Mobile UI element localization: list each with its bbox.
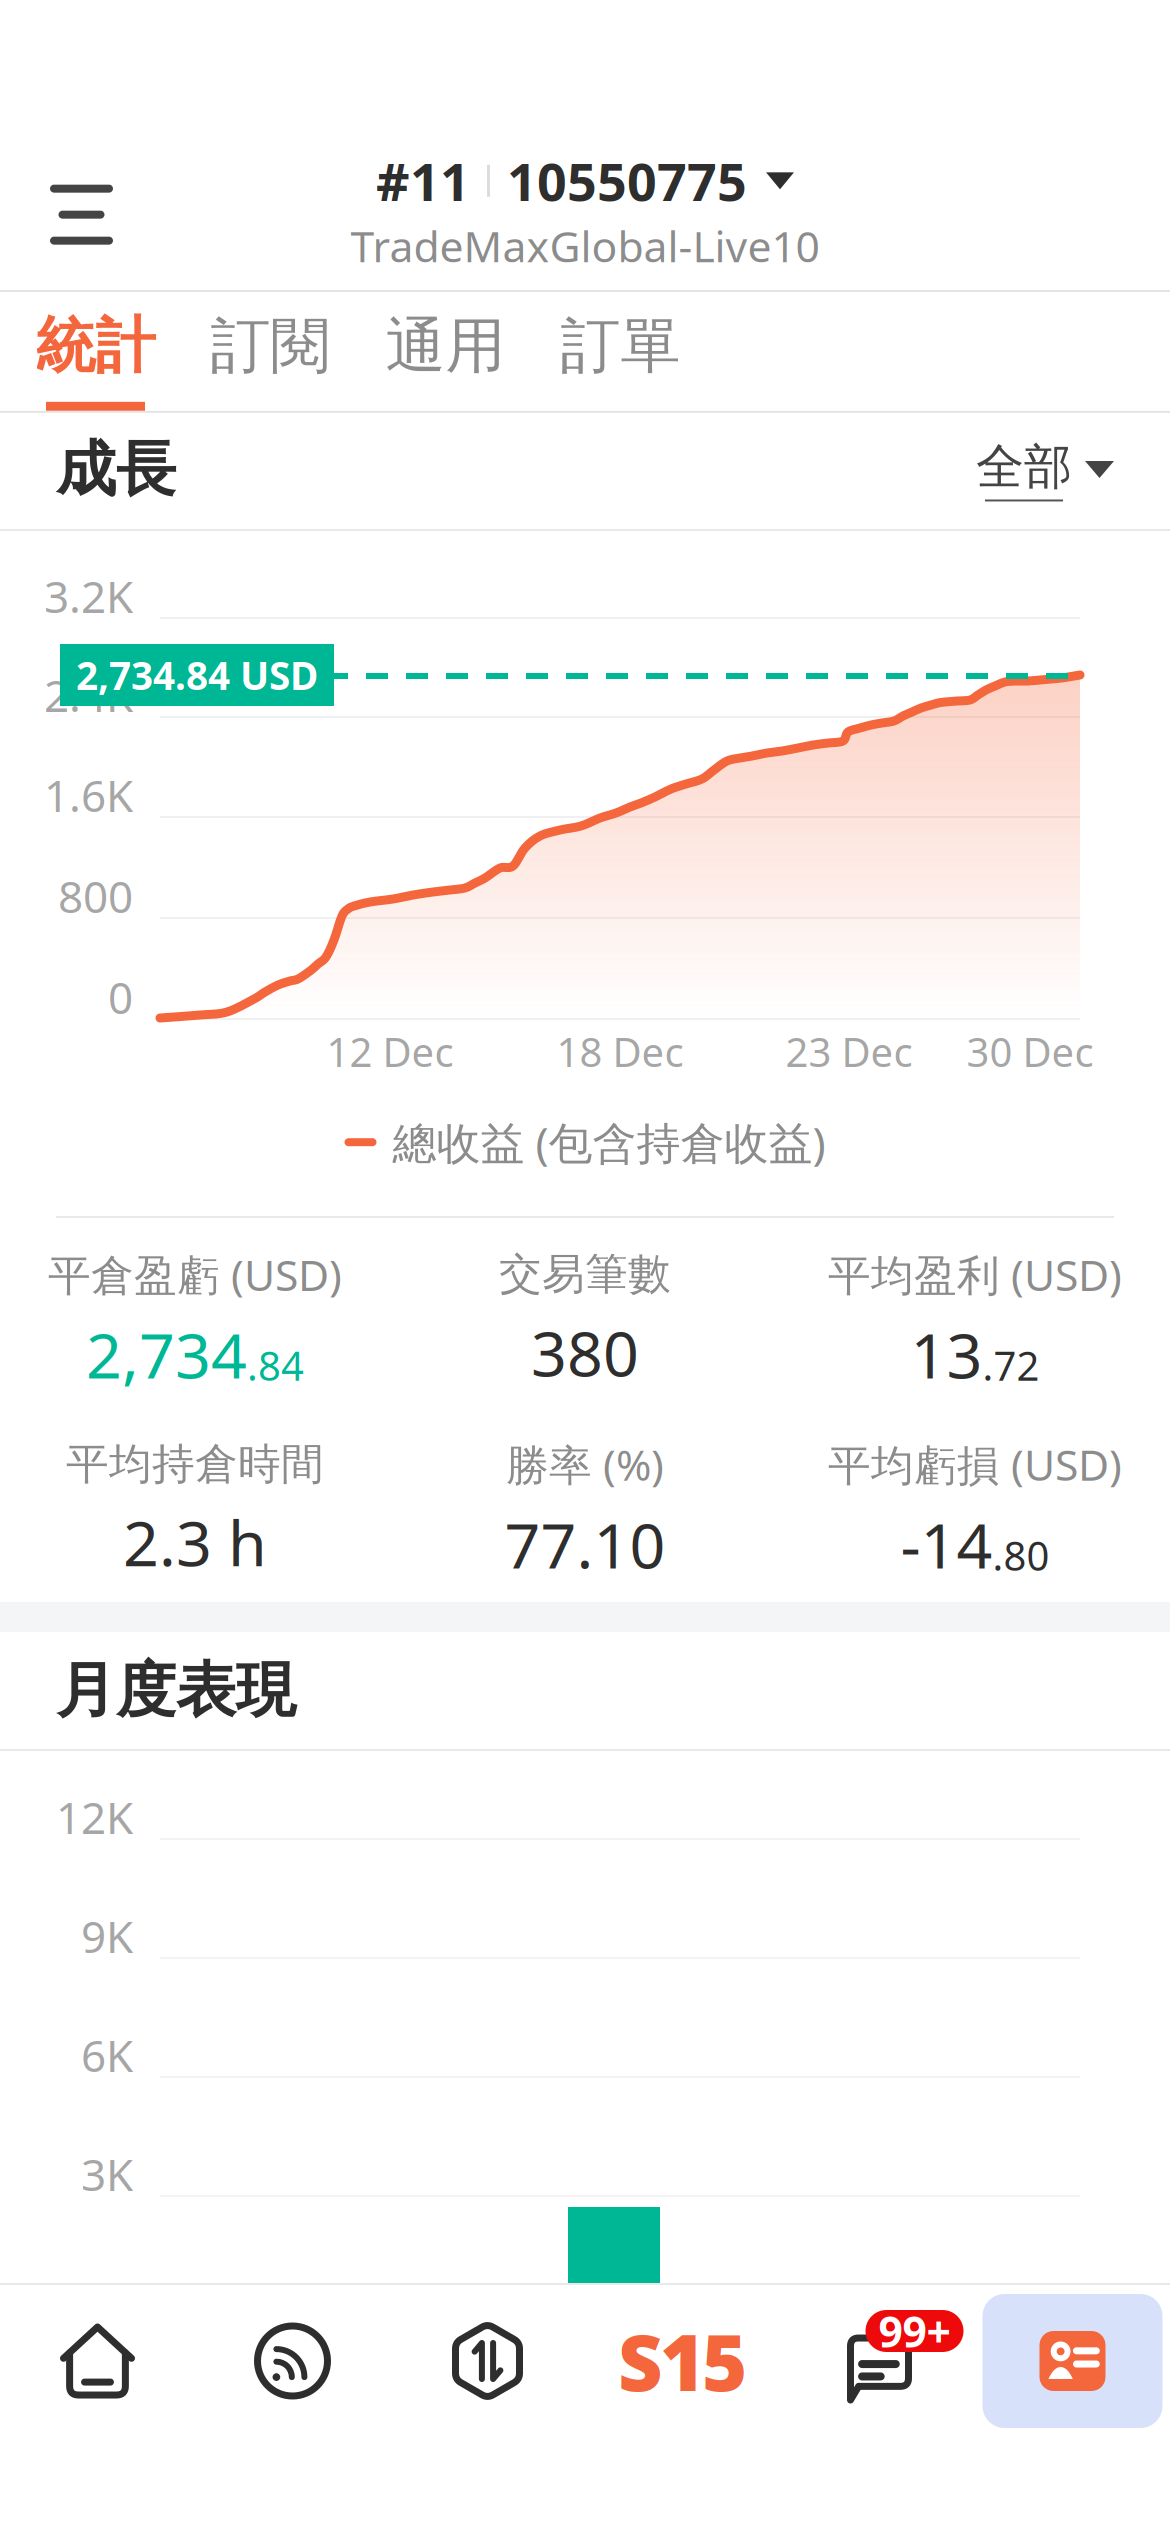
button[interactable]: 訂閱 <box>183 289 358 411</box>
staticText: 2,734 <box>86 1313 247 1396</box>
button[interactable]: S15 <box>585 2285 780 2437</box>
staticText: 平均持倉時間 <box>66 1438 324 1490</box>
staticText: 3K <box>81 2145 133 2203</box>
staticText: 2.3 h <box>123 1500 267 1584</box>
staticText: 77.10 <box>504 1502 665 1586</box>
staticText: 平倉盈虧 (USD) <box>48 1246 342 1303</box>
staticText: #11 <box>376 146 470 215</box>
staticText: 10550775 <box>507 146 747 215</box>
staticText: 23 Dec <box>785 1025 912 1078</box>
staticText: 訂閱 <box>210 309 330 383</box>
button[interactable]: Account <box>975 2285 1170 2437</box>
button[interactable]: Signals <box>195 2285 390 2437</box>
button[interactable]: Menu <box>0 161 153 278</box>
staticText: 99+ <box>878 2303 950 2359</box>
staticText: 交易筆數 <box>499 1248 671 1300</box>
staticText: .84 <box>247 1339 304 1392</box>
staticText: 1.6K <box>44 766 133 824</box>
staticText: 2.4K <box>44 666 133 724</box>
staticText: 6K <box>81 2026 133 2084</box>
staticText: 平均盈利 (USD) <box>828 1246 1122 1303</box>
staticText: 12K <box>56 1788 133 1846</box>
staticText: 9K <box>81 1907 133 1965</box>
staticText: 2,734.84 USD <box>76 649 318 701</box>
staticText: 18 Dec <box>556 1025 683 1078</box>
staticText: 12 Dec <box>326 1025 453 1078</box>
staticText: 800 <box>58 867 133 925</box>
staticText: 13 <box>910 1313 982 1396</box>
staticText: .72 <box>982 1339 1039 1392</box>
staticText: 月度表現 <box>56 1654 296 1727</box>
staticText: .80 <box>992 1529 1049 1582</box>
staticText: 通用 <box>385 309 505 383</box>
button[interactable]: Trade <box>390 2285 585 2437</box>
button[interactable]: 訂單 <box>533 289 708 411</box>
staticText: 成長 <box>56 433 176 506</box>
staticText: TradeMaxGlobal-Live10 <box>350 217 819 274</box>
button[interactable]: 全部 <box>985 437 1114 501</box>
staticText: 30 Dec <box>966 1025 1093 1078</box>
button[interactable]: Chat <box>780 2285 975 2437</box>
staticText: -14 <box>900 1502 992 1586</box>
staticText: 3.2K <box>44 567 133 625</box>
staticText: 全部 <box>976 437 1072 496</box>
button[interactable]: 統計 <box>8 289 183 411</box>
staticText: 0 <box>108 968 133 1026</box>
staticText: 總收益 (包含持倉收益) <box>392 1113 825 1171</box>
staticText: 平均虧損 (USD) <box>828 1436 1122 1493</box>
staticText: S15 <box>618 2310 747 2412</box>
button[interactable]: Home <box>0 2285 195 2437</box>
staticText: 訂單 <box>560 309 680 383</box>
staticText: 380 <box>531 1310 639 1394</box>
staticText: 統計 <box>35 309 155 383</box>
staticText: 勝率 (%) <box>506 1436 664 1493</box>
button[interactable]: 通用 <box>358 289 533 411</box>
